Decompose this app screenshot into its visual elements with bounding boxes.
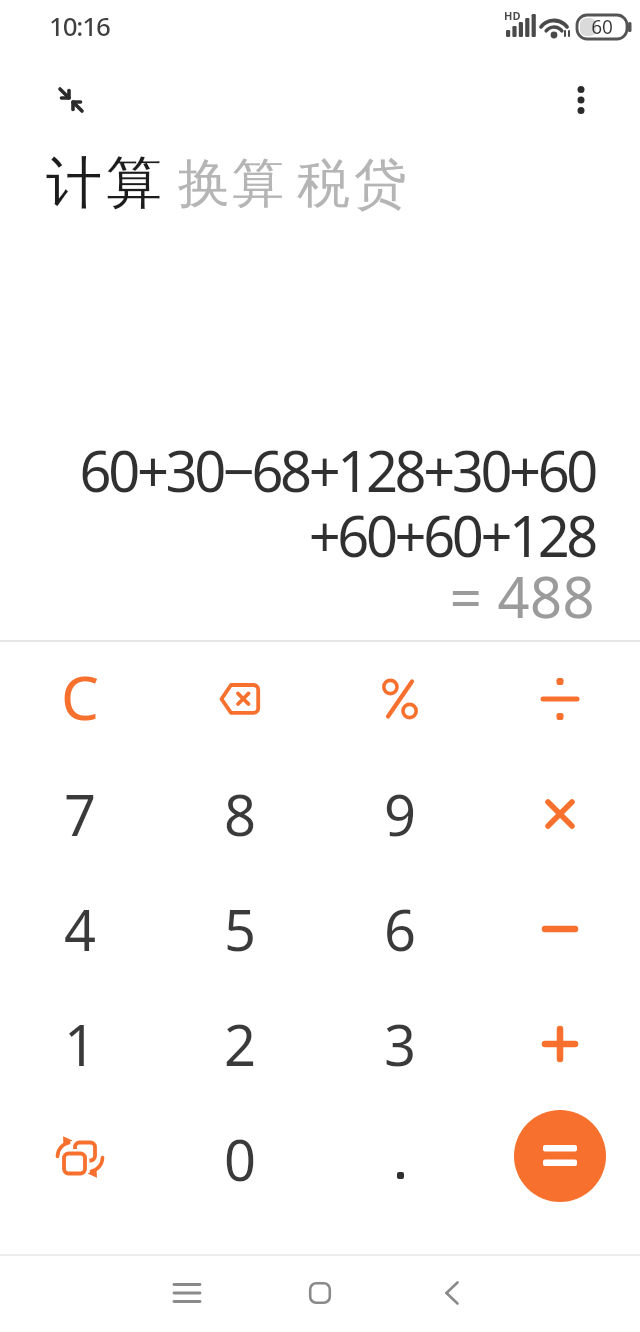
button[interactable]: 4 <box>0 871 160 986</box>
staticText: 税贷 <box>295 151 409 213</box>
button[interactable] <box>428 1269 476 1317</box>
staticText: 5 <box>224 891 257 967</box>
staticText: 10:16 <box>49 8 110 43</box>
staticText: 8 <box>224 776 257 852</box>
staticText: 计算 <box>44 148 164 214</box>
staticText: 60+30−68+128+30+60 <box>79 432 595 508</box>
button[interactable] <box>163 1269 211 1317</box>
staticText: 7 <box>64 776 97 852</box>
staticText: 9 <box>384 776 417 852</box>
button[interactable]: 2 <box>160 986 320 1101</box>
button[interactable]: C <box>0 641 160 756</box>
button[interactable] <box>480 871 640 986</box>
staticText: 4 <box>64 891 97 967</box>
button[interactable] <box>480 986 640 1101</box>
button[interactable] <box>320 1101 480 1216</box>
staticText: +60+60+128 <box>308 497 595 573</box>
button[interactable]: 5 <box>160 871 320 986</box>
staticText: 换算 <box>177 151 285 213</box>
button[interactable]: 税贷 <box>295 151 409 213</box>
staticText: 1 <box>64 1006 97 1082</box>
button[interactable]: 9 <box>320 756 480 871</box>
staticText: 0 <box>224 1121 257 1197</box>
button[interactable]: 计算 <box>44 148 164 214</box>
button[interactable]: 6 <box>320 871 480 986</box>
button[interactable]: 7 <box>0 756 160 871</box>
button[interactable] <box>480 1101 640 1216</box>
button[interactable]: 1 <box>0 986 160 1101</box>
button[interactable] <box>296 1269 344 1317</box>
button[interactable] <box>47 76 95 124</box>
staticText: 3 <box>384 1006 417 1082</box>
button[interactable] <box>320 641 480 756</box>
staticText: 2 <box>224 1006 257 1082</box>
button[interactable]: 0 <box>160 1101 320 1216</box>
button[interactable] <box>160 641 320 756</box>
staticText: 6 <box>384 891 417 967</box>
staticText: C <box>61 656 99 738</box>
staticText: = 488 <box>449 558 595 634</box>
button[interactable]: 8 <box>160 756 320 871</box>
button[interactable] <box>480 641 640 756</box>
button[interactable] <box>557 76 605 124</box>
button[interactable]: 3 <box>320 986 480 1101</box>
staticText: HD <box>504 8 521 23</box>
button[interactable]: 换算 <box>177 151 285 213</box>
staticText: 60 <box>585 14 619 40</box>
button[interactable] <box>0 1101 160 1216</box>
button[interactable] <box>480 756 640 871</box>
